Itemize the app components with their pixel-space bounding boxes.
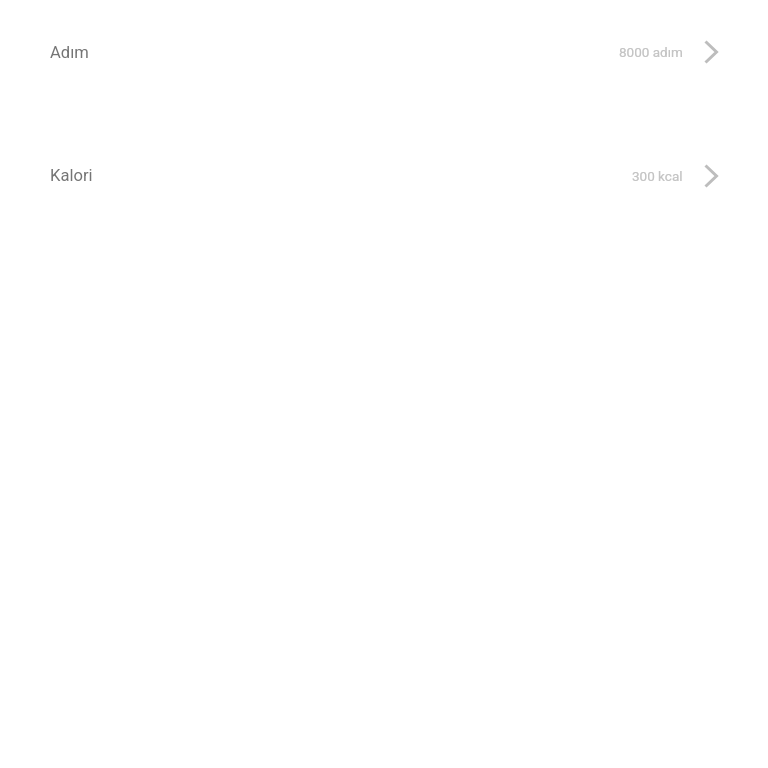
other: Open Kalori	[704, 164, 718, 188]
staticText: Kalori	[50, 166, 93, 185]
other: Open Adım	[704, 40, 718, 64]
button[interactable]: Adım	[0, 1, 768, 103]
button[interactable]: Kalori	[0, 114, 768, 237]
staticText: 8000 adım	[619, 44, 683, 60]
staticText: Adım	[50, 43, 89, 62]
staticText: 300 kcal	[632, 168, 683, 184]
